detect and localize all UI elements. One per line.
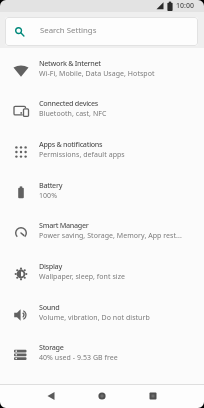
staticText: Sound [39, 302, 60, 312]
button[interactable]: Storage [0, 335, 204, 375]
button[interactable] [45, 390, 57, 402]
staticText: Search Settings [40, 25, 97, 36]
button[interactable]: Search Settings [5, 17, 198, 46]
button[interactable] [96, 390, 108, 402]
button[interactable]: Sound [0, 295, 204, 335]
staticText: Bluetooth, cast, NFC [39, 109, 107, 119]
staticText: Volume, vibration, Do not disturb [39, 313, 150, 323]
staticText: Wi-Fi, Mobile, Data Usage, Hotspot [39, 69, 155, 79]
staticText: Storage [39, 342, 64, 352]
button[interactable]: Network & Internet [0, 51, 204, 91]
staticText: Connected devices [39, 98, 99, 108]
staticText: Smart Manager [39, 220, 89, 230]
staticText: 10:00 [176, 1, 194, 11]
staticText: 40% used - 9.53 GB free [39, 353, 118, 363]
staticText: 100% [39, 191, 58, 201]
button[interactable]: Apps & notifications [0, 132, 204, 172]
staticText: Wallpaper, sleep, font size [39, 272, 125, 282]
staticText: Display [39, 261, 62, 271]
staticText: Battery [39, 180, 63, 190]
button[interactable]: Connected devices [0, 91, 204, 131]
button[interactable] [147, 390, 159, 402]
staticText: Apps & notifications [39, 139, 103, 149]
staticText: Power saving, Storage, Memory, App rest.… [39, 231, 182, 241]
button[interactable]: Display [0, 254, 204, 294]
button[interactable]: Smart Manager [0, 213, 204, 253]
staticText: Network & Internet [39, 58, 101, 68]
staticText: Permissions, default apps [39, 150, 125, 160]
button[interactable]: Battery [0, 173, 204, 213]
